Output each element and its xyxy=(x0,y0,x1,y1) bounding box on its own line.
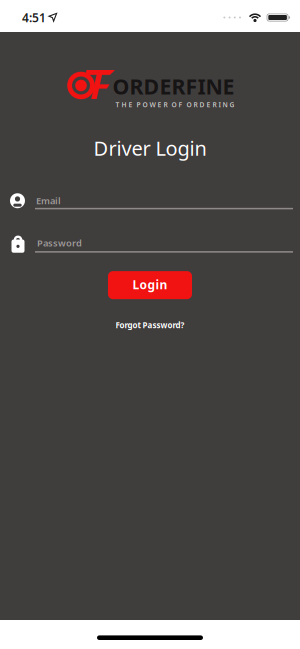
staticText: Password xyxy=(37,237,82,249)
button[interactable]: Login xyxy=(108,271,192,299)
button[interactable]: Email xyxy=(0,193,300,209)
staticText: Forgot Password? xyxy=(115,320,184,330)
staticText: Driver Login xyxy=(93,135,206,161)
staticText: Login xyxy=(132,277,167,293)
button[interactable]: Password xyxy=(0,234,300,253)
staticText: 4:51 xyxy=(22,9,46,25)
staticText: ORDERFINE xyxy=(112,72,234,100)
staticText: Email xyxy=(36,194,61,207)
staticText: T H E P O W E R O F O R D E R I N G xyxy=(115,100,234,109)
button[interactable]: Forgot Password? xyxy=(115,320,184,330)
